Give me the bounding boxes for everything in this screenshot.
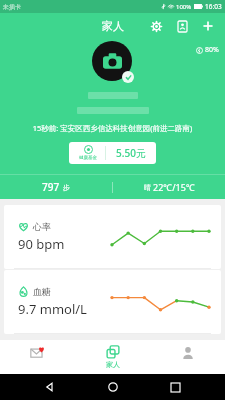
staticText: 健康基金 <box>79 155 97 161</box>
staticText: 16:03 <box>205 2 222 11</box>
button[interactable]: 联系人 <box>171 15 193 37</box>
button[interactable]: 血糖 <box>4 270 221 334</box>
staticText: 步 <box>63 183 70 192</box>
staticText: 9.7 mmol/L <box>18 300 87 318</box>
button[interactable]: 主页 <box>100 374 126 400</box>
staticText: 90 bpm <box>18 235 65 253</box>
button[interactable]: 我的 <box>150 340 225 374</box>
button[interactable]: 消息 <box>0 340 75 374</box>
button[interactable]: 设置 <box>145 15 167 37</box>
staticText: 家人 <box>102 19 124 33</box>
staticText: 未插卡 <box>3 3 21 11</box>
button[interactable]: 最近任务 <box>162 374 188 400</box>
staticText: 15秒前: 宝安区西乡信达科技创意园(前进二路南) <box>0 123 225 133</box>
button[interactable]: 心率 <box>4 205 221 269</box>
staticText: 5.50元 <box>116 146 146 160</box>
button[interactable]: 头像 <box>92 41 134 83</box>
staticText: 22℃/15℃ <box>153 181 195 193</box>
button[interactable]: 添加 <box>197 15 219 37</box>
button[interactable]: 健康基金 <box>69 142 156 164</box>
button[interactable]: 晴 <box>113 175 225 199</box>
button[interactable]: 797 <box>0 175 112 199</box>
staticText: 家人 <box>106 360 120 369</box>
staticText: 血糖 <box>33 286 51 297</box>
staticText: 797 <box>42 180 60 194</box>
button[interactable]: 返回 <box>37 374 63 400</box>
button[interactable]: 家人 <box>75 340 150 374</box>
staticText: 80% <box>205 45 219 55</box>
staticText: 心率 <box>33 221 51 232</box>
staticText: 晴 <box>144 183 151 192</box>
staticText: 100% <box>176 3 192 11</box>
